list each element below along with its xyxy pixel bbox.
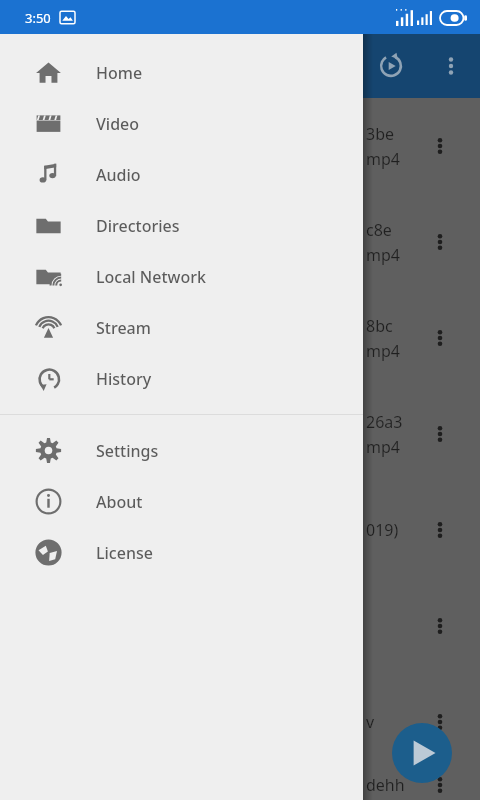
- button[interactable]: History: [0, 353, 363, 404]
- button[interactable]: dehh: [0, 770, 480, 800]
- staticText: 26a3: [366, 411, 403, 433]
- staticText: About: [96, 491, 143, 513]
- button[interactable]: Item options: [420, 606, 460, 646]
- staticText: History: [96, 368, 152, 390]
- staticText: 3be: [366, 123, 395, 145]
- staticText: c8e: [366, 219, 392, 241]
- button[interactable]: c8e: [0, 194, 480, 290]
- button[interactable]: Item options: [420, 318, 460, 358]
- staticText: Directories: [96, 215, 180, 237]
- button[interactable]: Item options: [420, 770, 460, 800]
- staticText: mp4: [366, 340, 400, 362]
- button[interactable]: Play: [392, 723, 452, 783]
- button[interactable]: Stream: [0, 302, 363, 353]
- staticText: mp4: [366, 436, 400, 458]
- button[interactable]: Settings: [0, 425, 363, 476]
- staticText: Audio: [96, 164, 141, 186]
- button[interactable]: Item options: [420, 126, 460, 166]
- button[interactable]: 3be: [0, 98, 480, 194]
- staticText: Video: [96, 113, 140, 135]
- button[interactable]: Local Network: [0, 251, 363, 302]
- staticText: mp4: [366, 148, 400, 170]
- staticText: Stream: [96, 317, 151, 339]
- button[interactable]: v: [0, 674, 480, 770]
- button[interactable]: 26a3: [0, 386, 480, 482]
- staticText: dehh: [366, 774, 405, 796]
- button[interactable]: 019): [0, 482, 480, 578]
- button[interactable]: License: [0, 527, 363, 578]
- button[interactable]: Audio: [0, 149, 363, 200]
- button[interactable]: Item options: [420, 222, 460, 262]
- button[interactable]: Home: [0, 47, 363, 98]
- button[interactable]: Item options: [420, 414, 460, 454]
- staticText: 3:50: [25, 9, 51, 27]
- staticText: 019): [366, 519, 399, 541]
- button[interactable]: About: [0, 476, 363, 527]
- button[interactable]: Item options: [420, 702, 460, 742]
- staticText: Home: [96, 62, 143, 84]
- button[interactable]: Item options: [420, 510, 460, 550]
- staticText: 8bc: [366, 315, 393, 337]
- staticText: v: [366, 711, 375, 733]
- staticText: Local Network: [96, 266, 206, 288]
- staticText: mp4: [366, 244, 400, 266]
- button[interactable]: Item options: [0, 578, 480, 674]
- button[interactable]: More options: [428, 43, 474, 89]
- staticText: License: [96, 542, 153, 564]
- staticText: Settings: [96, 440, 159, 462]
- button[interactable]: 8bc: [0, 290, 480, 386]
- button[interactable]: Directories: [0, 200, 363, 251]
- button[interactable]: Refresh: [368, 43, 414, 89]
- button[interactable]: Video: [0, 98, 363, 149]
